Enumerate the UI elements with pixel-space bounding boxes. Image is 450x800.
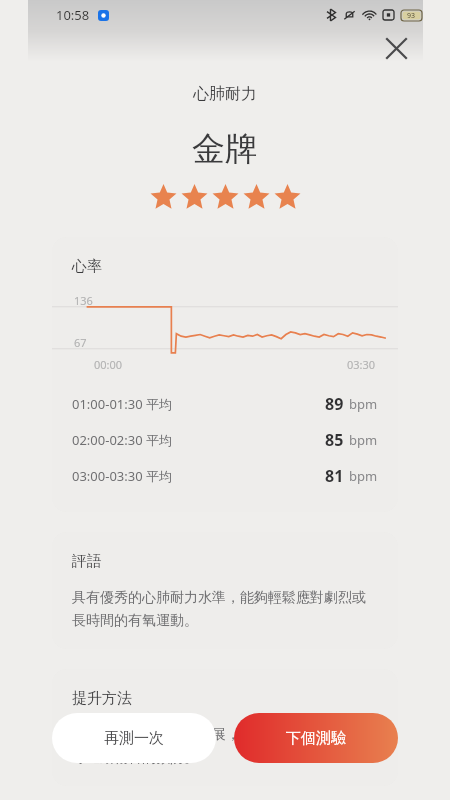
staticText: 85 xyxy=(325,429,344,451)
staticText: 具有優秀的心肺耐力水準，能夠輕鬆應對劇烈或長時間的有氧運動。 xyxy=(72,589,378,629)
staticText: bpm xyxy=(349,395,378,413)
staticText: 03:00-03:30 平均 xyxy=(72,467,173,485)
button[interactable]: 下個測驗 xyxy=(234,713,398,763)
staticText: 00:00 xyxy=(94,357,123,372)
staticText: 評語 xyxy=(72,552,102,571)
staticText: 89 xyxy=(325,393,344,415)
staticText: 136 xyxy=(74,293,93,308)
staticText: bpm xyxy=(349,467,378,485)
staticText: 02:00-02:30 平均 xyxy=(72,431,173,449)
staticText: 提升方法 xyxy=(72,689,132,708)
staticText: 金牌 xyxy=(0,128,450,170)
button[interactable]: 再測一次 xyxy=(52,713,216,763)
staticText: 03:30 xyxy=(347,357,376,372)
staticText: 下個測驗 xyxy=(286,729,346,748)
staticText: 再測一次 xyxy=(104,729,164,748)
staticText: 10:58 xyxy=(56,6,90,24)
button[interactable]: Close xyxy=(382,34,410,62)
staticText: 持續執行規律運動或伸展，同時重視熱身、緩和等運動傷害的預防。 xyxy=(72,726,378,766)
staticText: 93 xyxy=(407,11,416,21)
staticText: 01:00-01:30 平均 xyxy=(72,395,173,413)
staticText: 81 xyxy=(325,465,344,487)
staticText: 心率 xyxy=(72,257,102,276)
staticText: 67 xyxy=(74,335,87,350)
staticText: bpm xyxy=(349,431,378,449)
staticText: 心肺耐力 xyxy=(0,84,450,104)
